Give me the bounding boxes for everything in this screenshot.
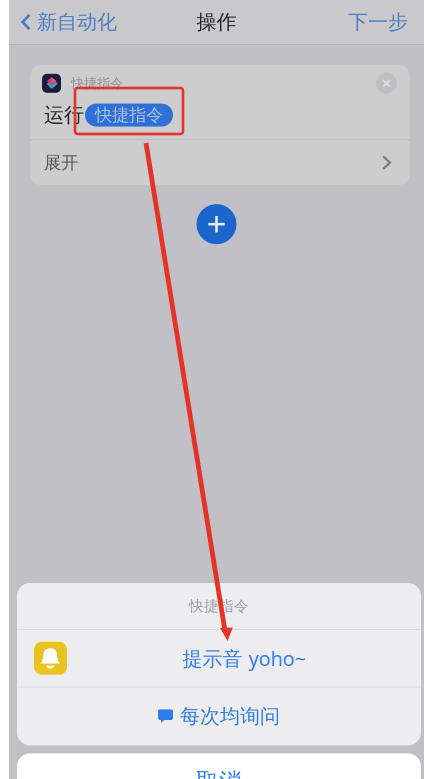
- staticText: 快捷指令: [95, 104, 163, 126]
- staticText: 快捷指令: [71, 75, 123, 91]
- staticText: 快捷指令: [189, 597, 249, 615]
- button[interactable]: 展开: [30, 140, 410, 185]
- button[interactable]: 取消: [17, 753, 421, 779]
- button[interactable]: 每次均询问: [17, 687, 421, 745]
- button[interactable]: Remove action: [376, 73, 397, 94]
- button[interactable]: 提示音 yoho~: [17, 630, 421, 687]
- button[interactable]: 下一步: [340, 0, 424, 44]
- staticText: 下一步: [348, 10, 408, 34]
- staticText: 每次均询问: [180, 704, 280, 729]
- button[interactable]: Add action: [196, 204, 236, 244]
- button[interactable]: 快捷指令: [85, 104, 173, 127]
- staticText: 操作: [196, 10, 236, 34]
- staticText: 取消: [196, 767, 242, 779]
- staticText: 新自动化: [37, 10, 117, 34]
- staticText: 提示音 yoho~: [182, 645, 305, 671]
- staticText: 展开: [44, 152, 78, 173]
- button[interactable]: 新自动化: [9, 0, 125, 44]
- staticText: 运行: [44, 103, 84, 127]
